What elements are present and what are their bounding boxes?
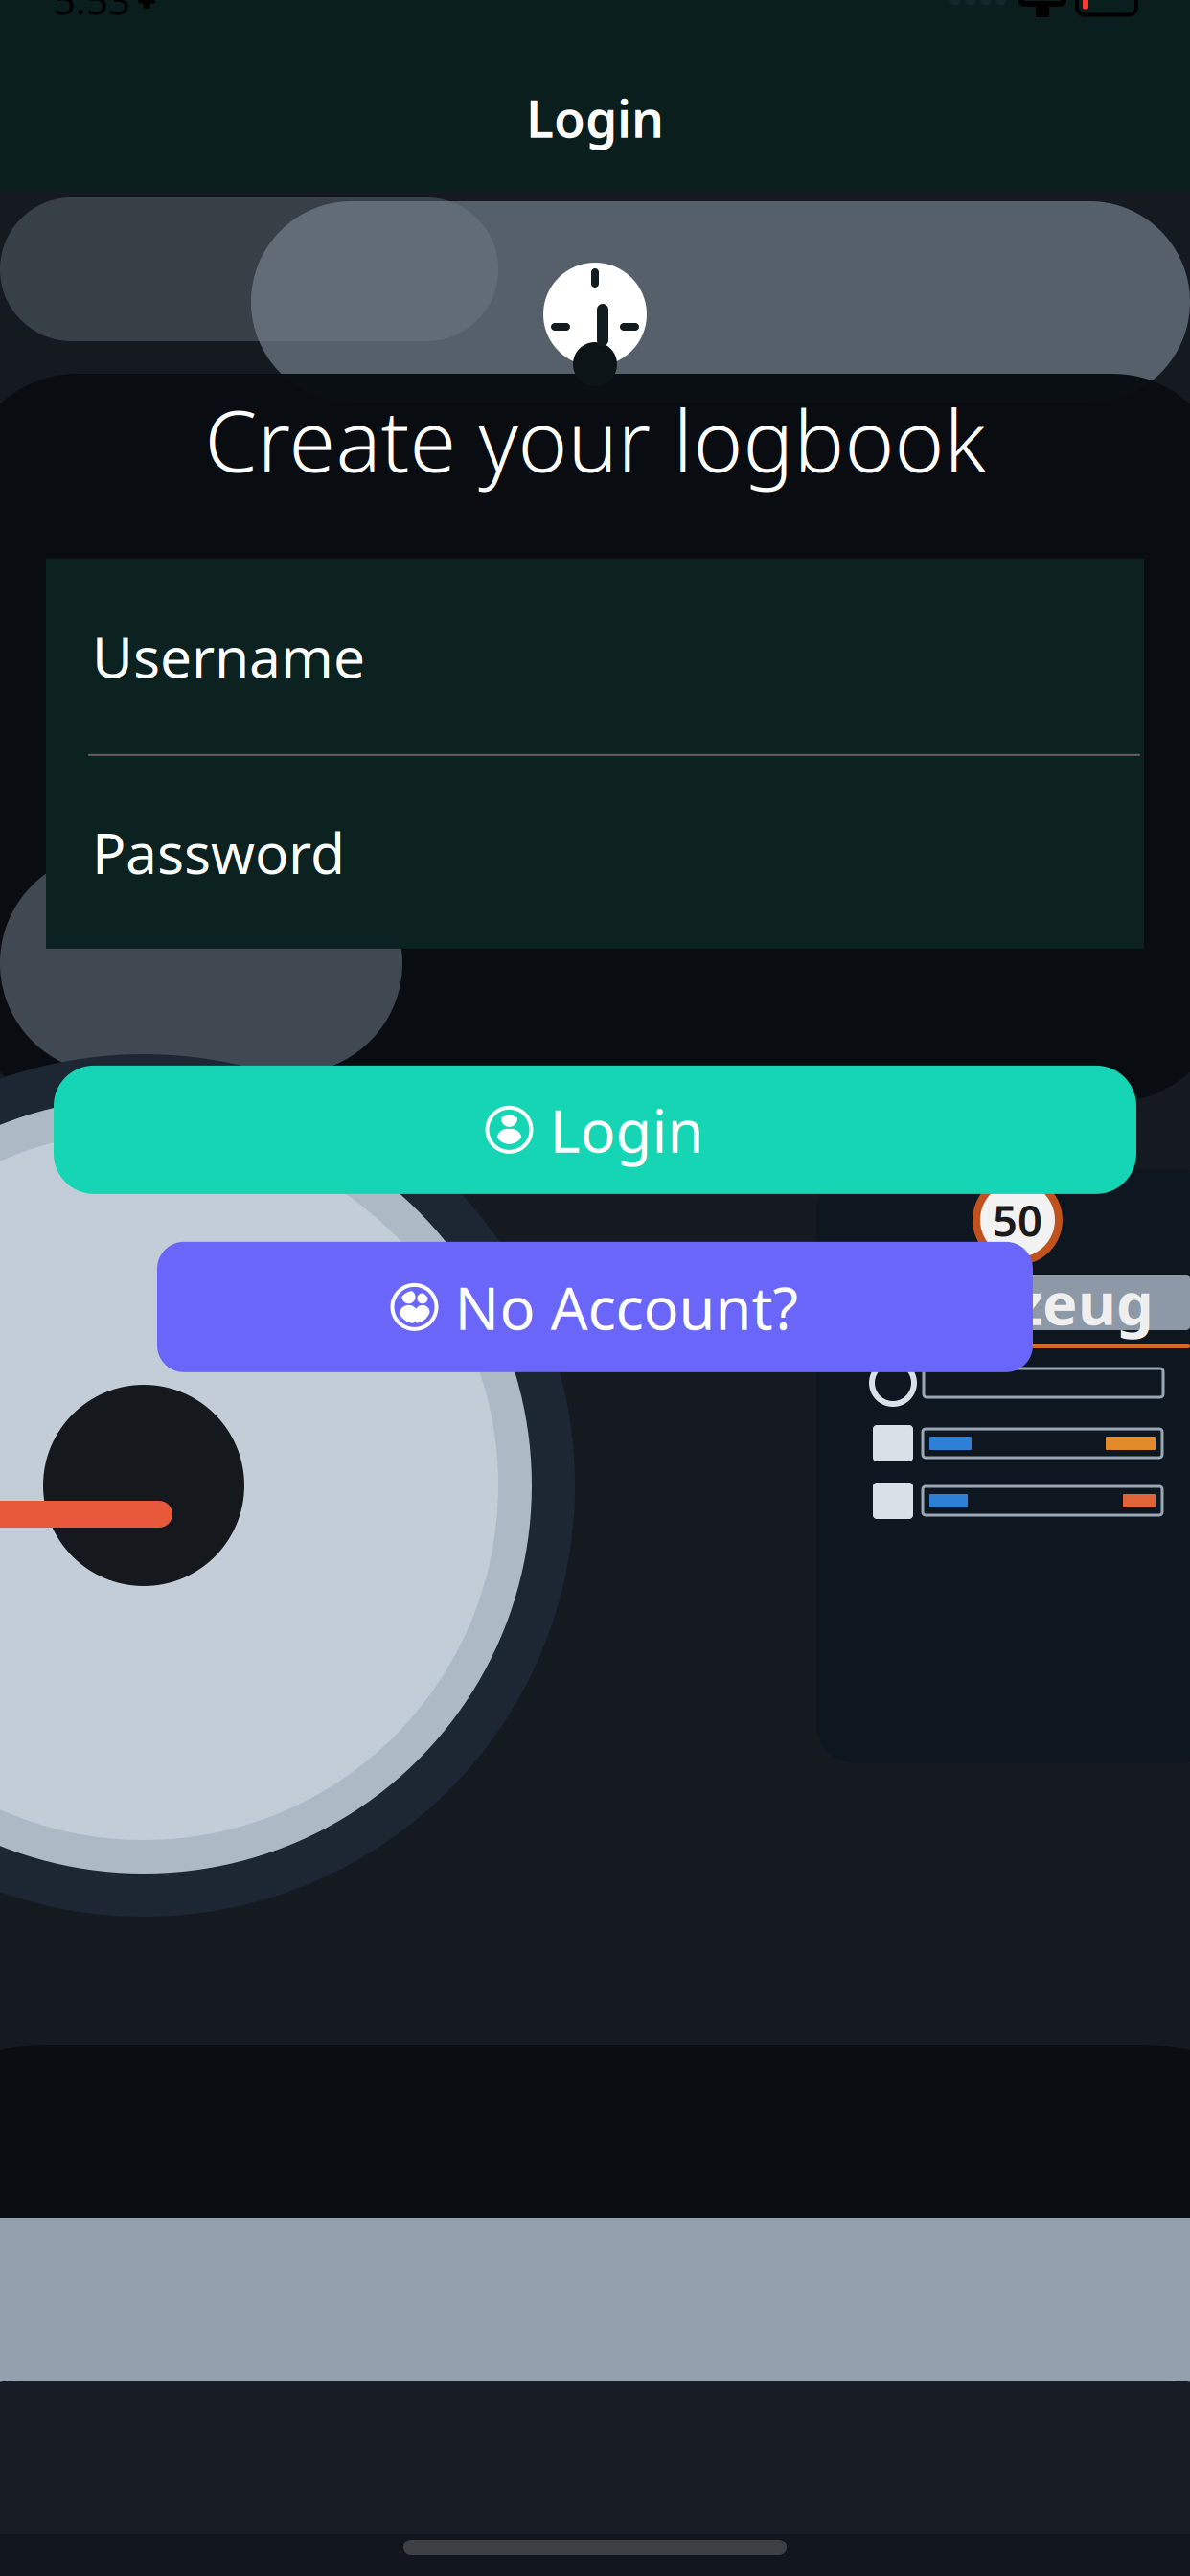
staticText: Login	[549, 1091, 704, 1169]
staticText: Create your logbook	[205, 383, 985, 495]
staticText: No Account?	[455, 1268, 799, 1346]
button[interactable]: Login	[54, 1066, 1136, 1194]
button[interactable]: Username	[46, 559, 1144, 754]
staticText: Username	[92, 619, 365, 694]
staticText: Password	[92, 815, 345, 890]
staticText: 50	[993, 1191, 1042, 1249]
staticText: Login	[526, 84, 664, 152]
button[interactable]: No Account?	[157, 1242, 1033, 1372]
staticText: 5:53	[54, 0, 130, 25]
staticText: Fahrzeug	[881, 1263, 1154, 1341]
button[interactable]: Password	[46, 756, 1144, 949]
